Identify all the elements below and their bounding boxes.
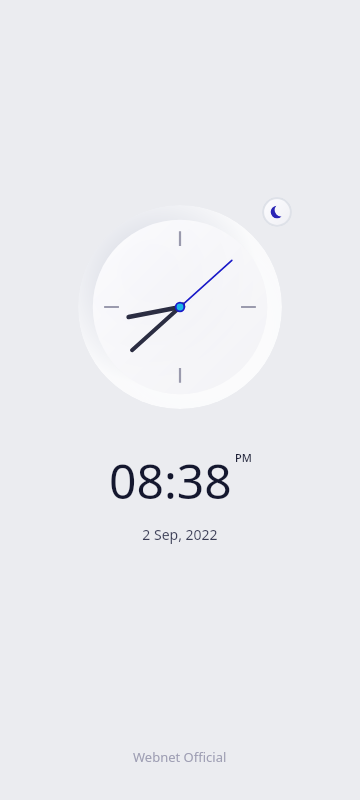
staticText: Webnet Official [133, 748, 227, 766]
button[interactable]: Night mode [262, 197, 292, 227]
staticText: PM [235, 450, 252, 465]
button[interactable]: Analog clock [78, 205, 282, 409]
staticText: 08:38 [109, 448, 232, 513]
staticText: 2 Sep, 2022 [142, 525, 218, 544]
